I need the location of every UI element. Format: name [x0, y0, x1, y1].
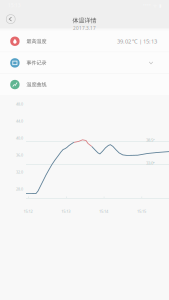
button[interactable]: 事件记录 [0, 52, 169, 73]
staticText: 温度曲线 [27, 81, 47, 88]
staticText: 15:15 [137, 208, 146, 214]
button[interactable]: 温度曲线 [0, 74, 169, 95]
staticText: 28.0 [16, 187, 23, 192]
staticText: 32.0 [16, 170, 23, 175]
staticText: 体温详情 [72, 17, 96, 24]
button[interactable]: Back [1, 10, 20, 29]
staticText: 15:13 [61, 208, 70, 214]
button[interactable]: 最高温度 [0, 31, 169, 52]
staticText: 15:12 [23, 208, 32, 214]
staticText: 36.0 [16, 153, 23, 158]
staticText: 38.5° [146, 137, 155, 143]
staticText: 48.0 [16, 102, 23, 107]
staticText: 2017.3.17 [73, 25, 96, 31]
staticText: 33.0° [146, 160, 155, 166]
staticText: 15:14 [99, 208, 108, 214]
staticText: 39.02 ℃ | 15:13 [117, 37, 157, 45]
staticText: 最高温度 [27, 38, 47, 44]
staticText: 40.0 [16, 136, 23, 141]
staticText: 事件记录 [27, 60, 47, 66]
staticText: 44.0 [16, 119, 23, 124]
